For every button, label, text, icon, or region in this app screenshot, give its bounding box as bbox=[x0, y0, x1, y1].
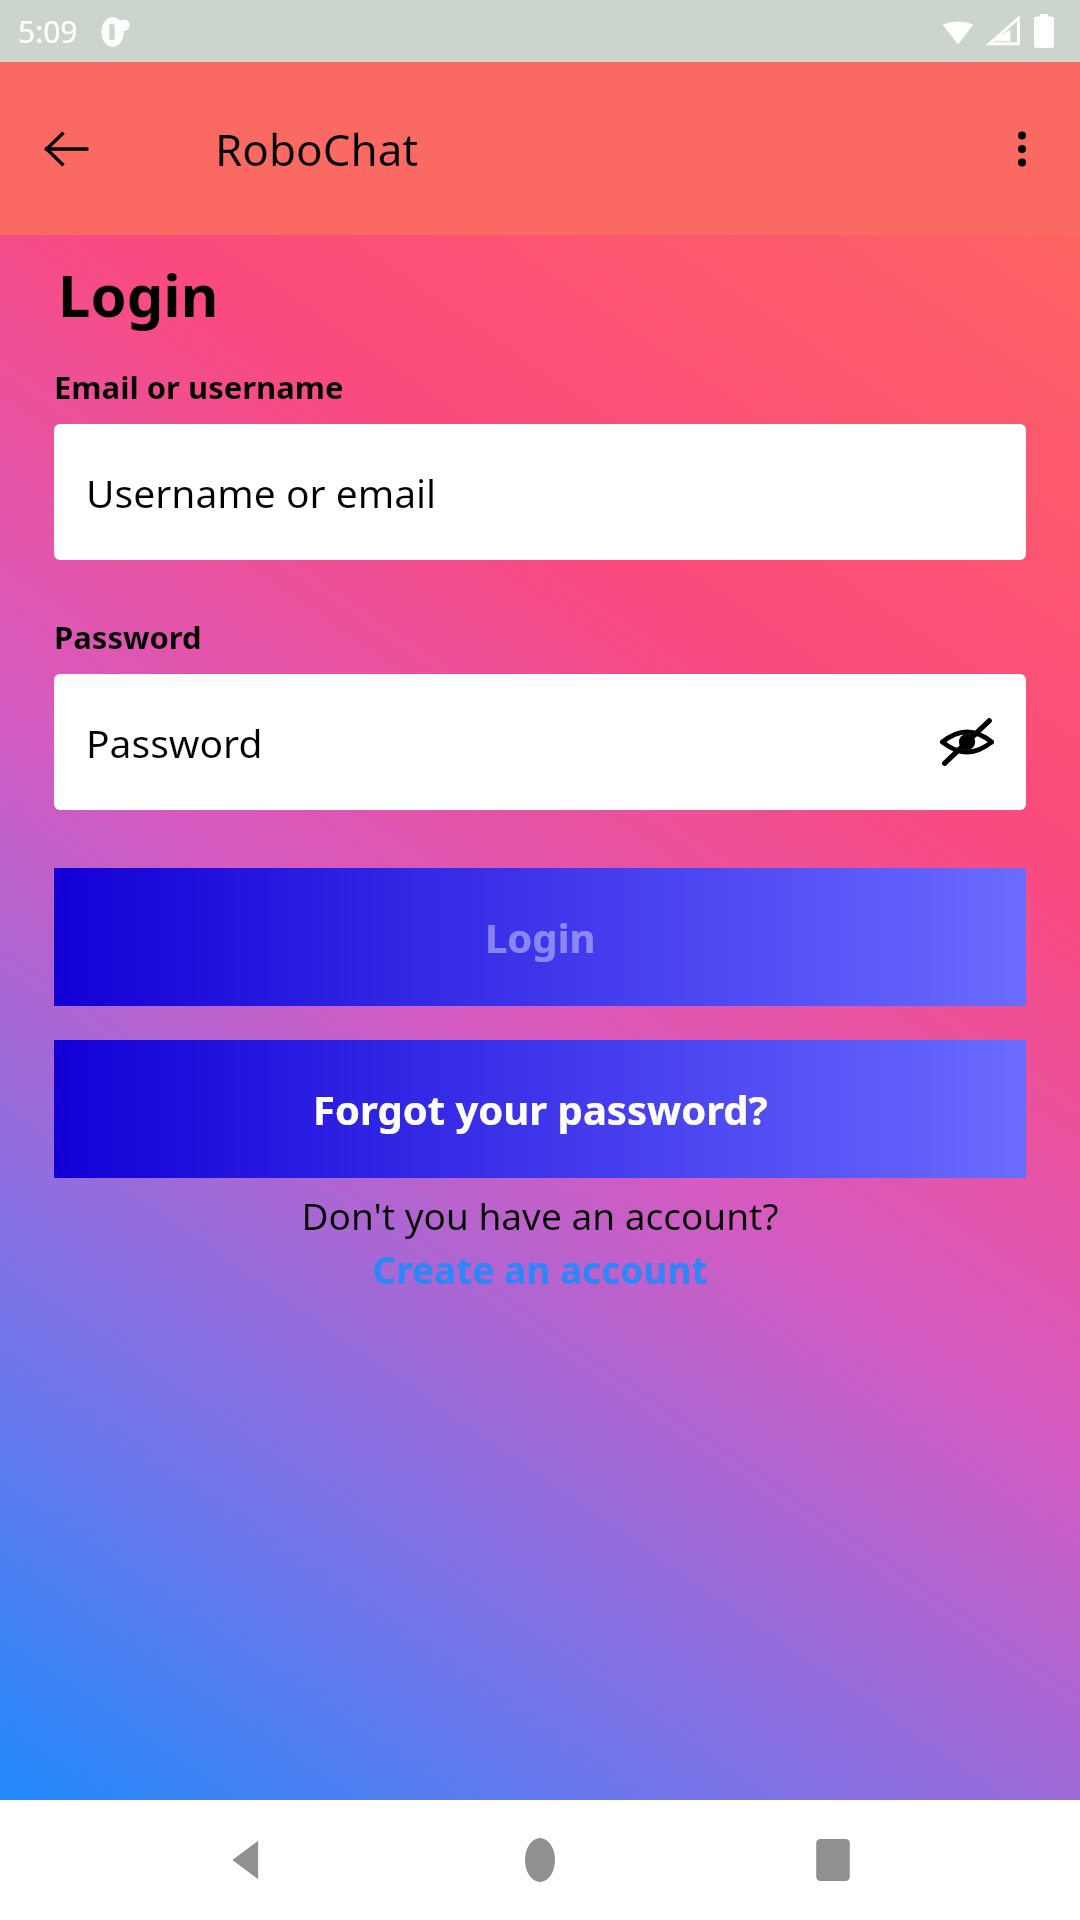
staticText: Don't you have an account? bbox=[0, 1190, 1080, 1240]
staticText: RoboChat bbox=[215, 119, 419, 179]
staticText: Login bbox=[485, 910, 596, 964]
button[interactable]: Login bbox=[54, 868, 1026, 1006]
button[interactable]: Password bbox=[54, 674, 1026, 810]
button[interactable]: Recent apps bbox=[788, 1815, 878, 1905]
staticText: Password bbox=[54, 616, 202, 658]
button[interactable]: Back bbox=[203, 1815, 293, 1905]
staticText: Username or email bbox=[86, 466, 437, 519]
button[interactable]: Back bbox=[30, 113, 102, 185]
button[interactable]: Username or email bbox=[54, 424, 1026, 560]
staticText: Password bbox=[86, 716, 263, 769]
button[interactable]: Show password bbox=[930, 705, 1004, 779]
button[interactable]: More options bbox=[982, 109, 1062, 189]
staticText: 5:09 bbox=[18, 11, 78, 52]
button[interactable]: Forgot your password? bbox=[54, 1040, 1026, 1178]
staticText: Forgot your password? bbox=[313, 1082, 768, 1136]
button[interactable]: Create an account bbox=[0, 1244, 1080, 1294]
staticText: Create an account bbox=[372, 1244, 708, 1294]
button[interactable]: Home bbox=[495, 1815, 585, 1905]
staticText: Email or username bbox=[54, 366, 344, 408]
staticText: Login bbox=[58, 255, 219, 334]
